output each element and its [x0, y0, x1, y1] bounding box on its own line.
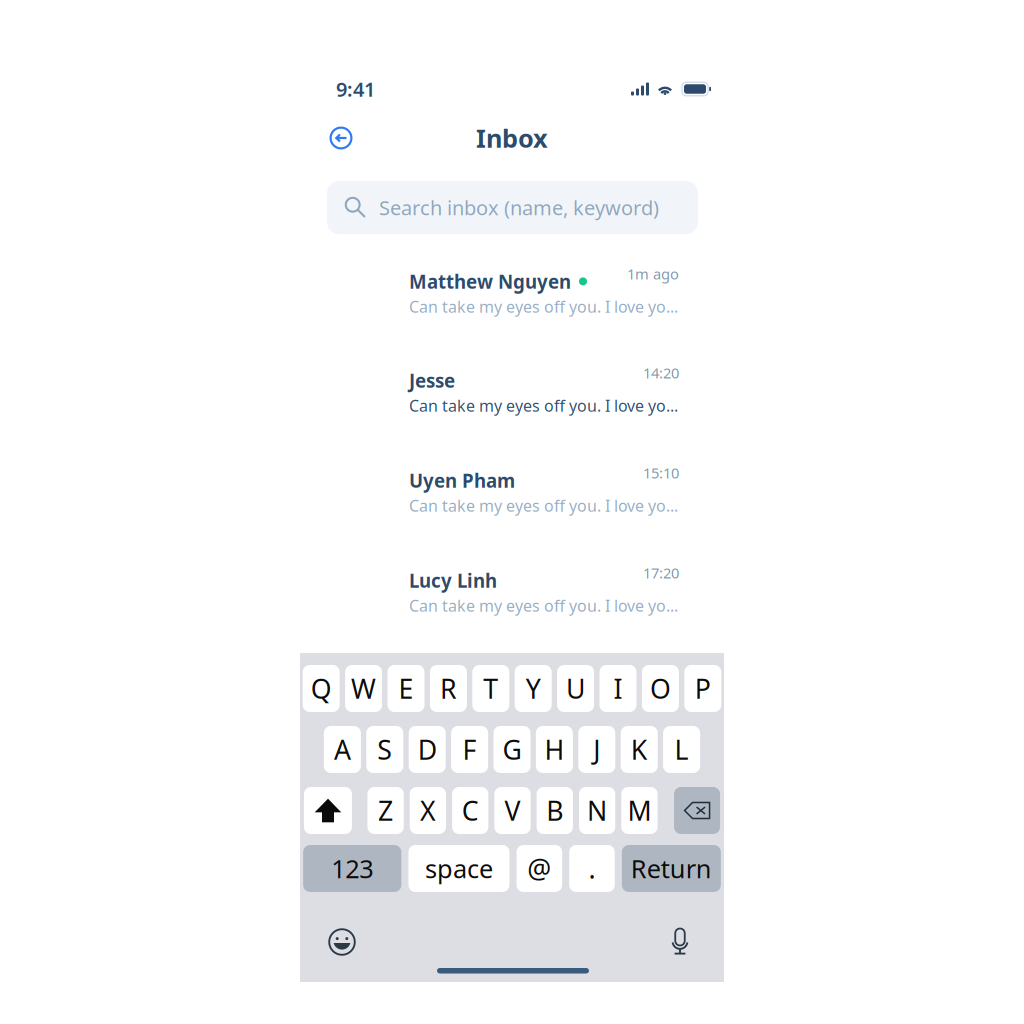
staticText: 9:41	[336, 76, 375, 102]
button[interactable]: Q	[303, 665, 340, 712]
staticText: .	[588, 851, 595, 886]
staticText: N	[587, 793, 607, 828]
staticText: Return	[631, 852, 712, 885]
button[interactable]: Z	[367, 787, 404, 834]
staticText: M	[627, 793, 651, 828]
button[interactable]: F	[451, 726, 488, 773]
button[interactable]: Emoji keyboard	[328, 928, 356, 956]
staticText: T	[483, 671, 498, 706]
staticText: X	[420, 793, 436, 828]
button[interactable]: I	[599, 665, 636, 712]
staticText: A	[334, 732, 351, 767]
staticText: Uyen Pham	[409, 468, 515, 493]
staticText: E	[398, 671, 413, 706]
staticText: I	[613, 671, 622, 706]
button[interactable]: A	[324, 726, 361, 773]
staticText: 1m ago	[627, 264, 679, 283]
button[interactable]: Return	[622, 845, 721, 892]
staticText: Y	[526, 671, 541, 706]
button[interactable]: @	[516, 845, 562, 892]
staticText: Lucy Linh	[409, 568, 497, 593]
button[interactable]: V	[494, 787, 531, 834]
staticText: Can take my eyes off you. I love yo...	[409, 395, 678, 416]
button[interactable]: Delete	[674, 787, 720, 834]
staticText: Matthew Nguyen	[409, 269, 571, 294]
button[interactable]: M	[621, 787, 657, 834]
staticText: 123	[331, 852, 373, 885]
button[interactable]: space	[408, 845, 509, 892]
staticText: G	[502, 732, 521, 767]
staticText: C	[462, 793, 479, 828]
staticText: Inbox	[476, 121, 548, 155]
button[interactable]: X	[410, 787, 446, 834]
button[interactable]: B	[537, 787, 573, 834]
staticText: D	[418, 732, 437, 767]
staticText: F	[463, 732, 477, 767]
staticText: Can take my eyes off you. I love yo...	[409, 595, 678, 616]
staticText: Can take my eyes off you. I love yo...	[409, 296, 678, 317]
staticText: space	[425, 852, 493, 885]
button[interactable]: D	[409, 726, 446, 773]
staticText: Z	[378, 793, 393, 828]
button[interactable]: 123	[303, 845, 401, 892]
button[interactable]: Matthew Nguyen	[409, 264, 714, 324]
button[interactable]: R	[430, 665, 467, 712]
staticText: K	[631, 732, 648, 767]
staticText: Jesse	[409, 368, 455, 393]
button[interactable]: Back	[324, 121, 358, 155]
button[interactable]: O	[642, 665, 679, 712]
button[interactable]: E	[387, 665, 424, 712]
button[interactable]: Y	[515, 665, 552, 712]
staticText: 17:20	[643, 563, 679, 582]
button[interactable]: Dictate	[669, 928, 691, 956]
button[interactable]: U	[557, 665, 594, 712]
staticText: R	[440, 671, 457, 706]
staticText: H	[544, 732, 564, 767]
staticText: 15:10	[643, 463, 679, 482]
staticText: O	[650, 671, 671, 706]
staticText: W	[351, 671, 376, 706]
button[interactable]: Search inbox (name, keyword)	[327, 181, 698, 234]
button[interactable]: T	[472, 665, 509, 712]
button[interactable]: L	[663, 726, 700, 773]
staticText: Search inbox (name, keyword)	[379, 194, 659, 221]
button[interactable]: C	[452, 787, 488, 834]
button[interactable]: H	[536, 726, 573, 773]
staticText: U	[566, 671, 585, 706]
staticText: V	[504, 793, 520, 828]
button[interactable]: Shift	[304, 787, 352, 834]
staticText: Can take my eyes off you. I love yo...	[409, 495, 678, 516]
button[interactable]: W	[345, 665, 382, 712]
button[interactable]: K	[621, 726, 658, 773]
staticText: L	[675, 732, 689, 767]
staticText: S	[377, 732, 392, 767]
staticText: 14:20	[643, 363, 679, 382]
button[interactable]: G	[493, 726, 530, 773]
button[interactable]: P	[684, 665, 721, 712]
button[interactable]: .	[569, 845, 615, 892]
button[interactable]: Lucy Linh	[409, 563, 714, 623]
staticText: B	[546, 793, 563, 828]
button[interactable]: S	[366, 726, 403, 773]
button[interactable]: Uyen Pham	[409, 463, 714, 523]
button[interactable]: N	[579, 787, 615, 834]
button[interactable]: Jesse	[409, 363, 714, 423]
staticText: Q	[311, 671, 332, 706]
staticText: J	[593, 732, 600, 767]
staticText: @	[527, 851, 551, 886]
staticText: P	[695, 671, 711, 706]
button[interactable]: J	[578, 726, 615, 773]
